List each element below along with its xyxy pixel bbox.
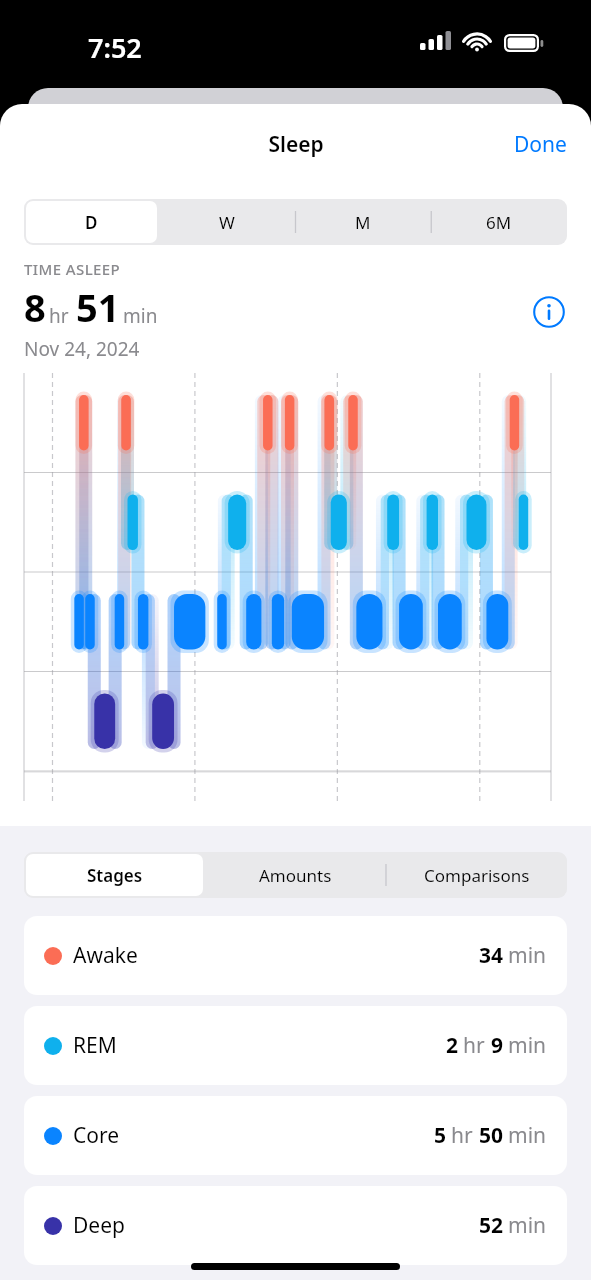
staticText: 8 bbox=[24, 281, 46, 333]
button[interactable]: Comparisons bbox=[388, 854, 565, 896]
staticText: M bbox=[355, 211, 371, 234]
staticText: Awake bbox=[73, 941, 138, 970]
staticText: 50 bbox=[479, 1121, 504, 1150]
staticText: Core bbox=[73, 1121, 120, 1150]
button[interactable]: Awake bbox=[24, 916, 567, 995]
button[interactable]: Amounts bbox=[207, 854, 384, 896]
staticText: Sleep bbox=[268, 130, 324, 159]
staticText: hr bbox=[463, 1031, 485, 1060]
button[interactable]: M bbox=[297, 201, 429, 243]
button[interactable]: 6M bbox=[433, 201, 565, 243]
button[interactable]: D bbox=[26, 201, 157, 243]
staticText: REM bbox=[73, 1031, 117, 1060]
staticText: Deep bbox=[73, 1211, 125, 1240]
staticText: Stages bbox=[87, 864, 143, 887]
staticText: hr bbox=[451, 1121, 473, 1150]
staticText: 2 bbox=[446, 1031, 459, 1060]
staticText: Comparisons bbox=[424, 864, 530, 887]
staticText: Amounts bbox=[259, 864, 332, 887]
button[interactable]: REM bbox=[24, 1006, 567, 1085]
staticText: min bbox=[508, 1031, 547, 1060]
staticText: 52 bbox=[479, 1211, 504, 1240]
staticText: D bbox=[85, 211, 98, 234]
button[interactable]: W bbox=[161, 201, 293, 243]
button[interactable]: Stages bbox=[26, 854, 203, 896]
button[interactable]: Deep bbox=[24, 1186, 567, 1265]
staticText: 9 bbox=[491, 1031, 504, 1060]
staticText: Nov 24, 2024 bbox=[24, 336, 140, 362]
staticText: min bbox=[508, 1211, 547, 1240]
staticText: min bbox=[508, 1121, 547, 1150]
button[interactable]: Done bbox=[500, 122, 581, 167]
staticText: 7:52 bbox=[88, 29, 142, 66]
staticText: Done bbox=[514, 130, 567, 159]
button[interactable]: About sleep stages bbox=[527, 290, 571, 334]
staticText: min bbox=[123, 303, 158, 329]
staticText: min bbox=[508, 941, 547, 970]
staticText: 5 bbox=[434, 1121, 447, 1150]
button[interactable]: Core bbox=[24, 1096, 567, 1175]
staticText: W bbox=[219, 211, 235, 234]
staticText: hr bbox=[49, 303, 69, 329]
staticText: 6M bbox=[486, 211, 512, 234]
staticText: TIME ASLEEP bbox=[24, 259, 121, 279]
staticText: 34 bbox=[479, 941, 504, 970]
staticText: 51 bbox=[76, 281, 120, 333]
